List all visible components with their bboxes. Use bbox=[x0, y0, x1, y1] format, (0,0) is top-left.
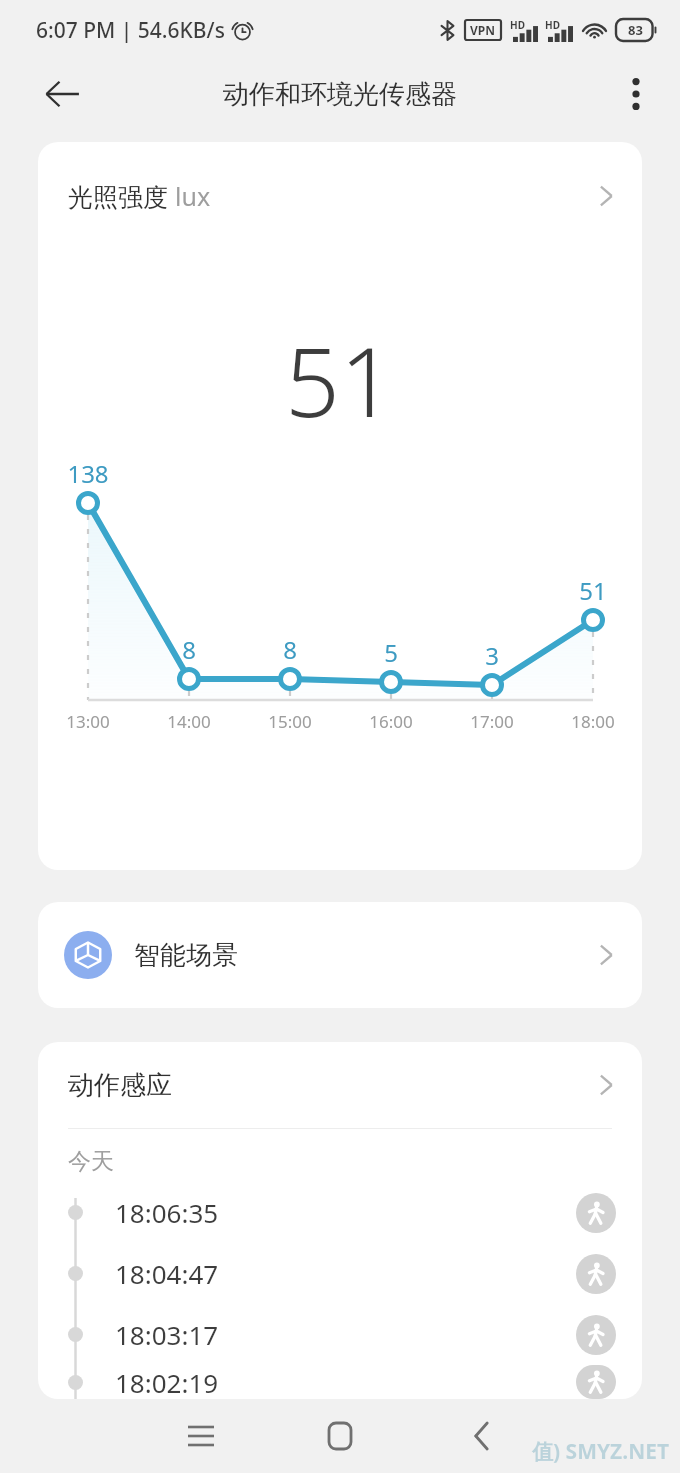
button[interactable]: 18:02:19 bbox=[38, 1365, 642, 1399]
staticText: 18:03:17 bbox=[115, 1317, 219, 1352]
button[interactable]: Recent apps bbox=[172, 1407, 230, 1465]
button[interactable]: Home bbox=[311, 1407, 369, 1465]
staticText: 值) SMYZ.NET bbox=[532, 1437, 670, 1466]
button[interactable]: More options bbox=[604, 62, 668, 126]
staticText: 13:00 bbox=[51, 710, 125, 733]
staticText: 智能场景 bbox=[134, 939, 238, 972]
staticText: lux bbox=[175, 179, 211, 213]
button[interactable]: 动作感应 bbox=[38, 1042, 642, 1128]
staticText: 16:00 bbox=[354, 710, 428, 733]
staticText: 51 bbox=[285, 314, 395, 445]
staticText: 18:04:47 bbox=[115, 1256, 219, 1291]
staticText: 5 bbox=[361, 636, 421, 669]
button[interactable]: 18:03:17 bbox=[38, 1304, 642, 1365]
staticText: 51 bbox=[563, 574, 623, 607]
button[interactable]: Back bbox=[28, 60, 96, 128]
staticText: 光照强度 bbox=[68, 179, 175, 213]
staticText: 3 bbox=[462, 639, 522, 672]
button[interactable]: 18:04:47 bbox=[38, 1243, 642, 1304]
staticText: VPN bbox=[470, 22, 496, 38]
button[interactable]: 18:06:35 bbox=[38, 1182, 642, 1243]
staticText: 15:00 bbox=[253, 710, 327, 733]
staticText: 6:07 PM | 54.6KB/s bbox=[36, 16, 225, 45]
button[interactable]: Back bbox=[452, 1407, 510, 1465]
staticText: 动作和环境光传感器 bbox=[223, 78, 457, 111]
staticText: 动作感应 bbox=[68, 1069, 172, 1102]
staticText: 18:02:19 bbox=[115, 1365, 219, 1399]
staticText: 今天 bbox=[68, 1147, 114, 1176]
button[interactable]: 智能场景 bbox=[38, 902, 642, 1008]
staticText: HD bbox=[545, 18, 560, 32]
staticText: 8 bbox=[260, 633, 320, 666]
staticText: 138 bbox=[58, 457, 118, 490]
staticText: 83 bbox=[628, 21, 643, 39]
staticText: 8 bbox=[159, 633, 219, 666]
staticText: 18:06:35 bbox=[115, 1195, 219, 1230]
staticText: 17:00 bbox=[455, 710, 529, 733]
staticText: 14:00 bbox=[152, 710, 226, 733]
staticText: 18:00 bbox=[556, 710, 630, 733]
staticText: HD bbox=[510, 18, 525, 32]
button[interactable]: 光照强度 bbox=[38, 142, 642, 250]
